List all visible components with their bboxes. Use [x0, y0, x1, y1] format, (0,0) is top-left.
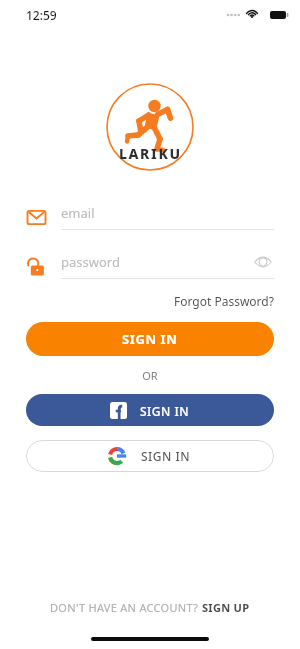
button[interactable]: password	[26, 248, 274, 282]
staticText: email	[61, 204, 95, 222]
button[interactable]: SIGN IN	[26, 394, 274, 426]
staticText: SIGN IN	[122, 330, 178, 348]
staticText: SIGN IN	[140, 403, 190, 419]
button[interactable]: Forgot Password?	[174, 290, 274, 312]
button[interactable]: Show password	[252, 251, 274, 273]
staticText: LARIKU	[119, 144, 182, 163]
button[interactable]: SIGN IN	[26, 440, 274, 472]
staticText: DON'T HAVE AN ACCOUNT?	[50, 600, 202, 615]
button[interactable]: email	[26, 200, 274, 234]
staticText: OR	[142, 368, 158, 383]
staticText: SIGN UP	[202, 600, 250, 615]
staticText: 12:59	[26, 7, 57, 23]
staticText: password	[61, 253, 252, 271]
staticText: SIGN IN	[141, 448, 191, 464]
button[interactable]: SIGN IN	[26, 322, 274, 356]
button[interactable]: DON'T HAVE AN ACCOUNT?	[40, 596, 260, 619]
